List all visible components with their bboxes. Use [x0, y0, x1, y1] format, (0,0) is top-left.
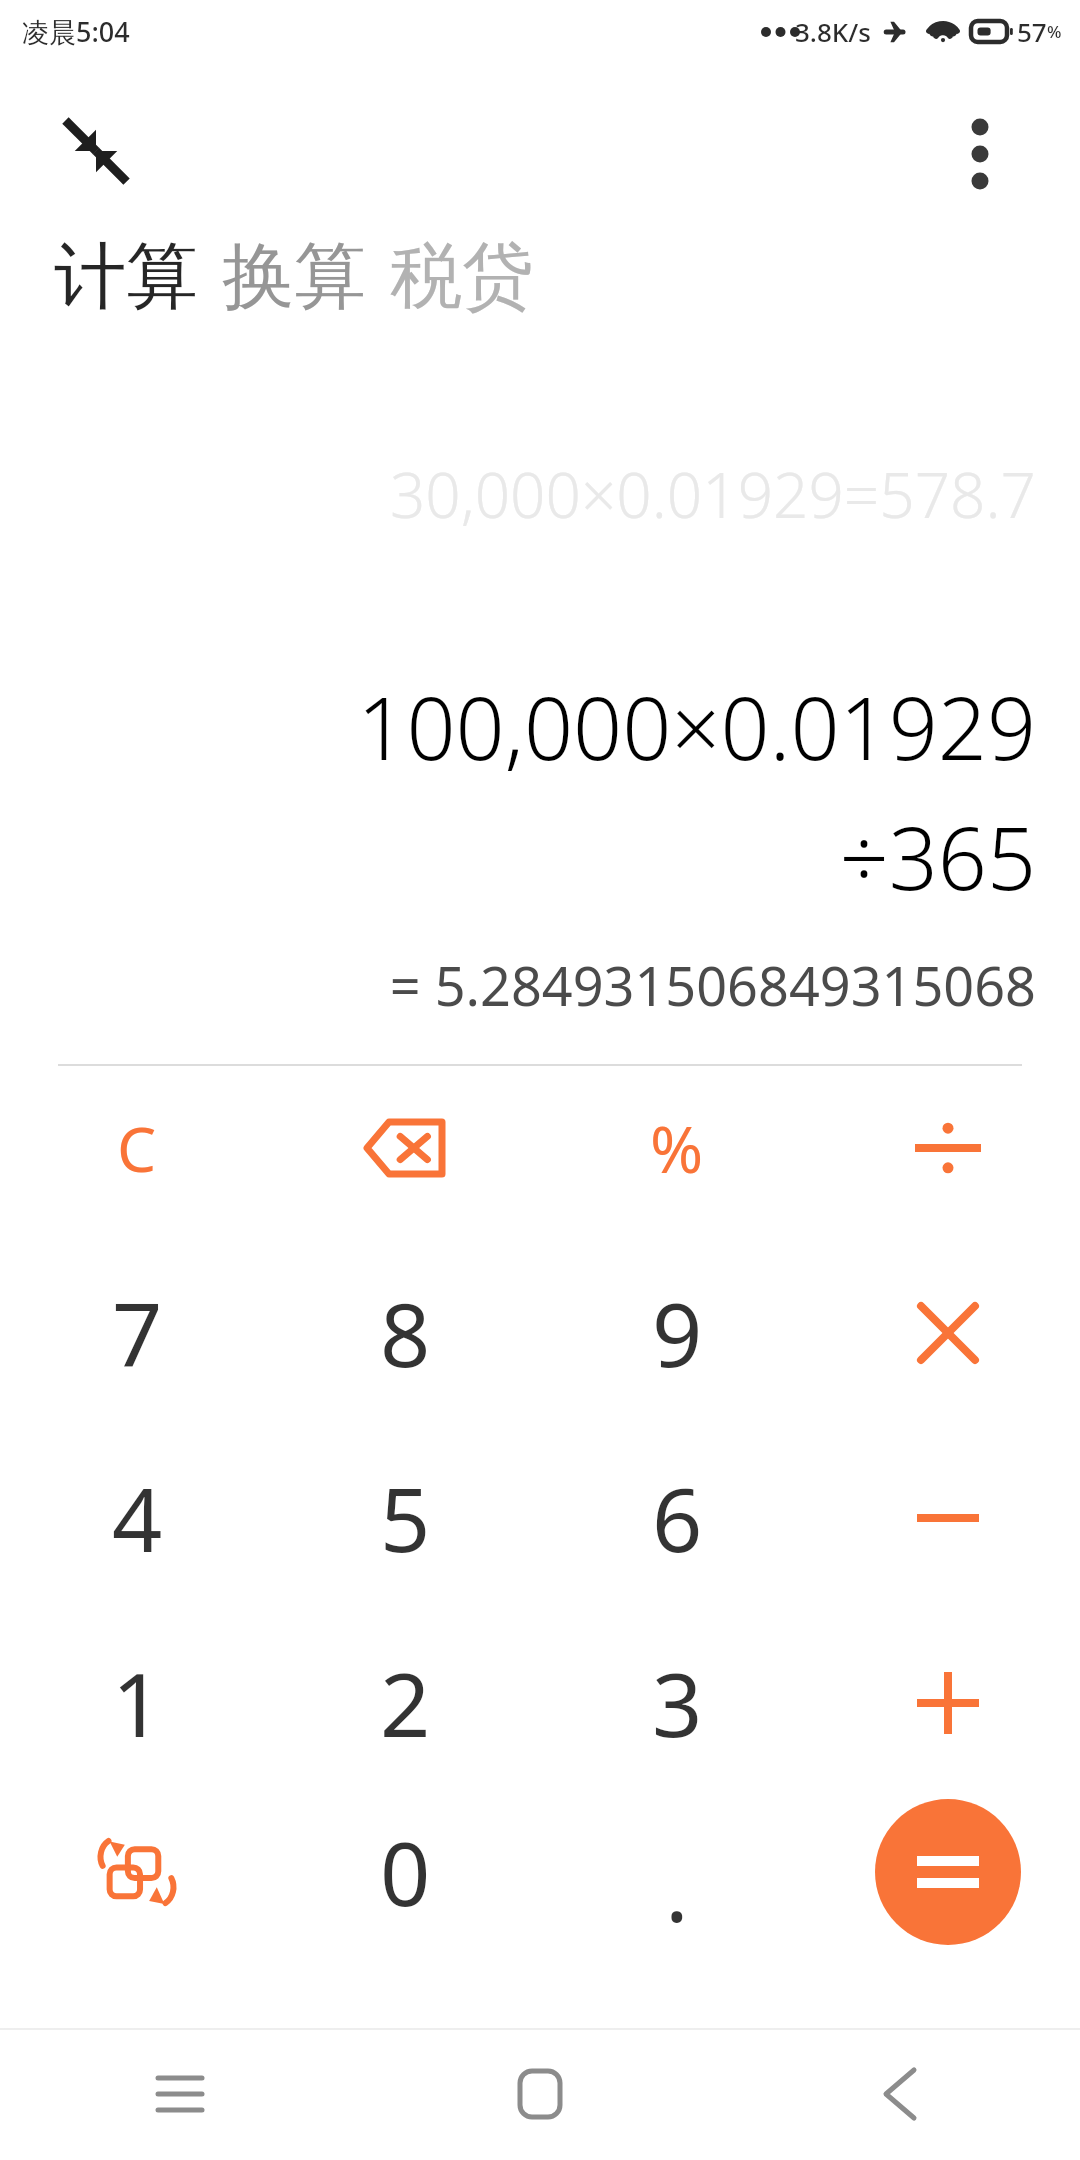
button[interactable]: 8	[280, 1245, 530, 1421]
staticText: 57	[1017, 14, 1047, 49]
button[interactable]: Backspace	[280, 1060, 530, 1236]
staticText: 6	[652, 1458, 703, 1578]
staticText: 凌晨5:04	[22, 13, 130, 50]
staticText: 税贷	[390, 232, 534, 323]
staticText: 9	[652, 1273, 703, 1393]
button[interactable]: 4	[12, 1430, 262, 1606]
staticText: 4	[112, 1458, 163, 1578]
button[interactable]: Collapse	[58, 110, 134, 186]
staticText: 2	[380, 1643, 431, 1763]
button[interactable]: 3	[552, 1615, 802, 1791]
staticText: 3	[652, 1643, 703, 1763]
button[interactable]: 计算	[54, 232, 198, 323]
button[interactable]: 7	[12, 1245, 262, 1421]
button[interactable]: Home	[480, 2034, 600, 2154]
button[interactable]: Plus	[823, 1615, 1073, 1791]
staticText: 0	[380, 1812, 431, 1932]
staticText: 8	[380, 1273, 431, 1393]
staticText: ÷365	[0, 798, 1036, 915]
button[interactable]: Multiply	[823, 1245, 1073, 1421]
staticText: %	[650, 1105, 704, 1192]
button[interactable]: 0	[280, 1784, 530, 1960]
staticText: 3.8K/s	[795, 14, 871, 49]
staticText: 换算	[222, 232, 366, 323]
staticText: 30,000×0.01929=578.7	[0, 452, 1036, 536]
staticText: = 5.284931506849315068	[0, 948, 1036, 1022]
button[interactable]: Convert	[12, 1784, 262, 1960]
staticText: 7	[112, 1273, 163, 1393]
button[interactable]: Minus	[823, 1430, 1073, 1606]
button[interactable]: 6	[552, 1430, 802, 1606]
staticText: 1	[112, 1643, 163, 1763]
button[interactable]: 换算	[222, 232, 366, 323]
staticText: 计算	[54, 232, 198, 323]
button[interactable]: More options	[930, 104, 1030, 204]
button[interactable]: .	[552, 1784, 802, 1960]
staticText: %	[1047, 20, 1062, 43]
button[interactable]: C	[12, 1060, 262, 1236]
staticText: C	[117, 1106, 157, 1190]
button[interactable]: %	[552, 1060, 802, 1236]
staticText: 5	[380, 1458, 431, 1578]
button[interactable]: Recents	[120, 2034, 240, 2154]
button[interactable]: 5	[280, 1430, 530, 1606]
button[interactable]: Equals	[875, 1799, 1021, 1945]
button[interactable]: Back	[840, 2034, 960, 2154]
button[interactable]: Divide	[823, 1060, 1073, 1236]
button[interactable]: 1	[12, 1615, 262, 1791]
button[interactable]: 税贷	[390, 232, 534, 323]
staticText: .	[665, 1828, 689, 1948]
staticText: 100,000×0.01929	[0, 668, 1036, 785]
button[interactable]: 9	[552, 1245, 802, 1421]
button[interactable]: 2	[280, 1615, 530, 1791]
